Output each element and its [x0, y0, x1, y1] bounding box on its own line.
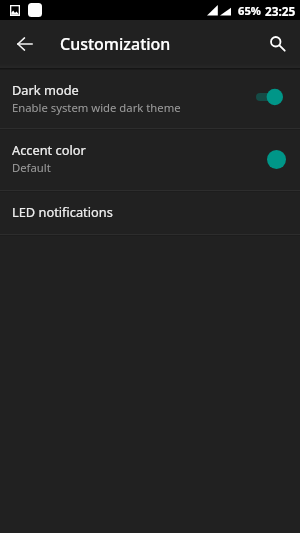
- button[interactable]: Back: [7, 26, 43, 62]
- staticText: Dark mode: [12, 81, 79, 98]
- staticText: Accent color: [12, 141, 86, 158]
- button[interactable]: Dark mode toggle: [256, 89, 283, 105]
- staticText: Default: [12, 160, 51, 175]
- button[interactable]: Accent color: [0, 130, 300, 190]
- button[interactable]: Dark mode: [0, 70, 300, 128]
- button[interactable]: LED notifications: [0, 192, 300, 234]
- staticText: Customization: [60, 33, 171, 55]
- button[interactable]: Accent color: [267, 150, 286, 169]
- staticText: LED notifications: [12, 203, 113, 220]
- staticText: Enable system wide dark theme: [12, 100, 181, 115]
- button[interactable]: Search: [260, 26, 296, 62]
- staticText: 23:25: [265, 3, 296, 19]
- staticText: 65%: [238, 3, 261, 18]
